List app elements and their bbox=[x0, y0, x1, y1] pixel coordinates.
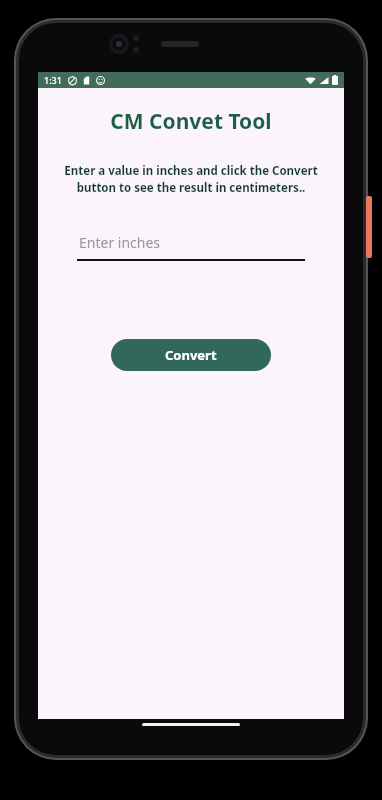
other: VPN bbox=[68, 76, 77, 85]
other: Wi-Fi bbox=[305, 76, 316, 85]
button[interactable]: Enter inches bbox=[77, 233, 305, 261]
other: SD card bbox=[82, 76, 91, 85]
staticText: Convert bbox=[165, 346, 217, 364]
staticText: CM Convet Tool bbox=[110, 107, 272, 136]
other: Notification bbox=[96, 76, 105, 85]
button[interactable]: Convert bbox=[111, 339, 271, 371]
other: Battery bbox=[332, 75, 338, 85]
staticText: Enter inches bbox=[79, 233, 161, 252]
staticText: 1:31 bbox=[44, 74, 62, 86]
other: Signal bbox=[319, 76, 329, 85]
staticText: Enter a value in inches and click the Co… bbox=[45, 163, 337, 195]
